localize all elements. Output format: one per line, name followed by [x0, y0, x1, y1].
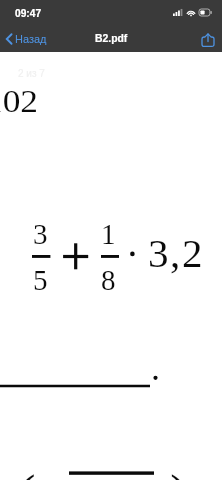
staticText: 3,2 [148, 230, 205, 275]
staticText: 8 [101, 264, 116, 296]
staticText: 102 [0, 84, 39, 118]
staticText: Назад [15, 33, 47, 45]
button[interactable]: Share [194, 29, 222, 49]
staticText: 2 из 7 [18, 68, 45, 79]
button[interactable]: Назад [0, 29, 57, 49]
staticText: 09:47 [15, 8, 42, 19]
staticText: ( [17, 464, 36, 480]
staticText: 1 [101, 218, 116, 250]
staticText: 5 [33, 264, 48, 296]
staticText: B2.pdf [95, 33, 128, 45]
staticText: ) [170, 464, 189, 480]
staticText: 3 [33, 218, 48, 250]
